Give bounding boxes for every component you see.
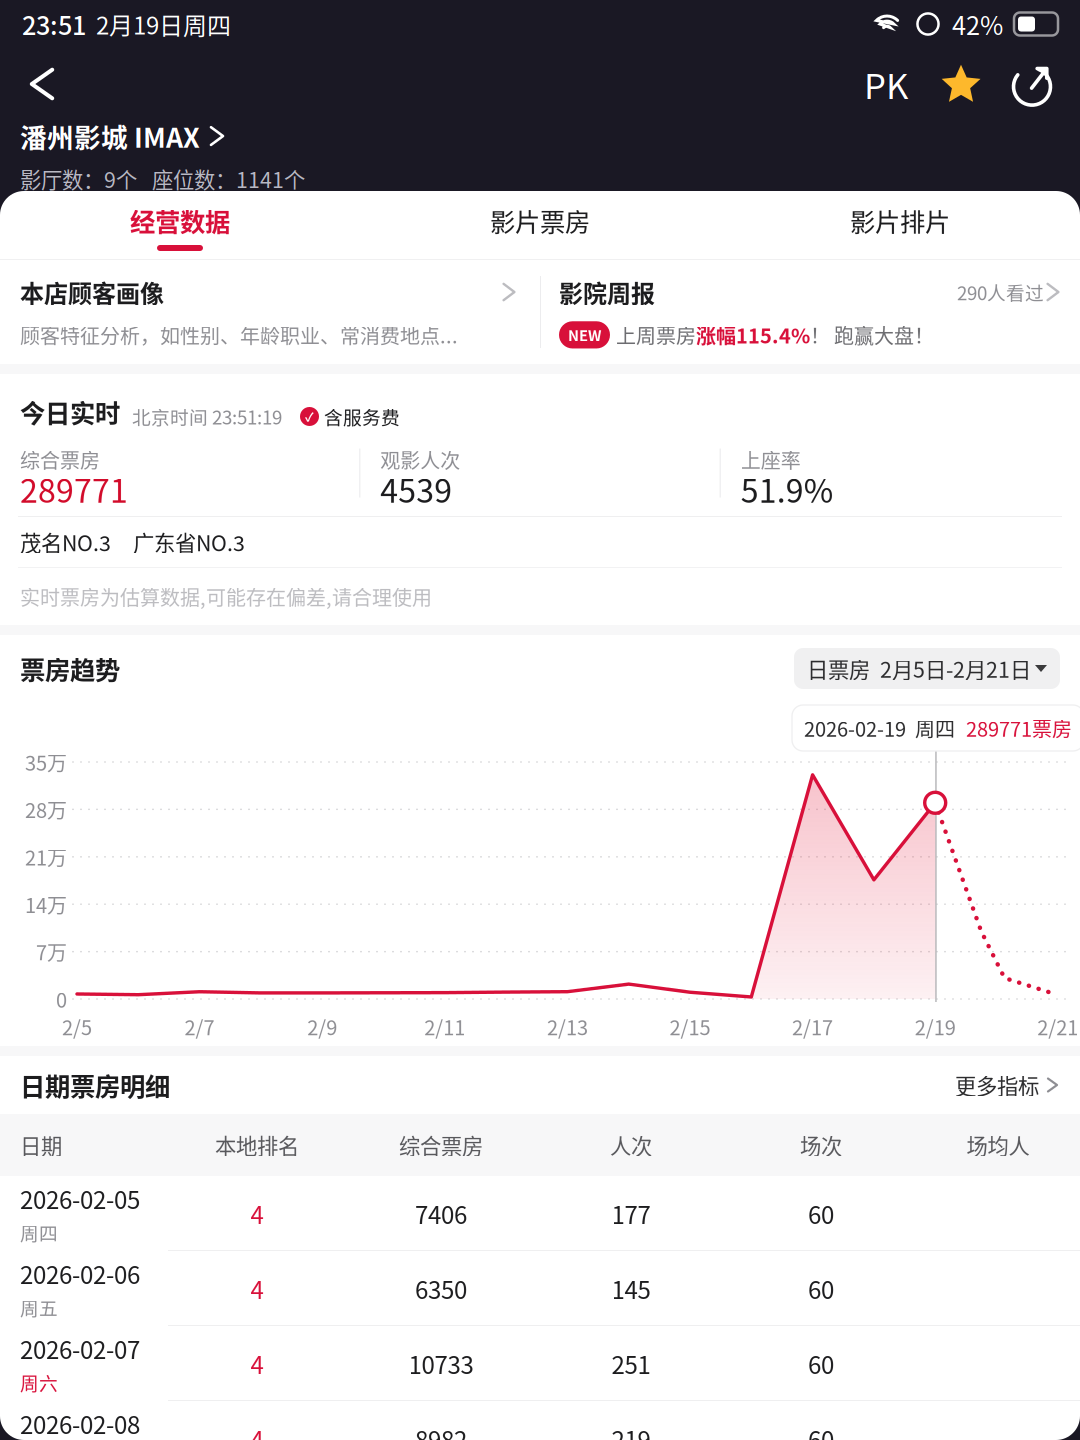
button[interactable]: 2026-02-07 (0, 1326, 1080, 1401)
staticText: 2/13 (547, 1012, 588, 1041)
staticText: 2月5日-2月21日 (880, 653, 1031, 684)
button[interactable]: 本店顾客画像 (0, 260, 540, 364)
staticText: 4539 (380, 466, 452, 512)
staticText: 2/7 (185, 1012, 215, 1041)
staticText: 0 (56, 984, 67, 1013)
staticText: NEW (568, 324, 601, 345)
staticText: 2026-02-19 (804, 713, 906, 742)
staticText: 28万 (25, 795, 67, 824)
staticText: 周四 (20, 1219, 58, 1246)
staticText: 影院周报 (559, 275, 655, 309)
staticText: 2/11 (424, 1012, 465, 1041)
staticText: 2026-02-06 (20, 1256, 140, 1291)
staticText: 实时票房为估算数据,可能存在偏差,请合理使用 (20, 582, 432, 611)
button[interactable]: 潘州影城 IMAX (20, 117, 1060, 155)
staticText: 今日实时 (20, 393, 120, 430)
staticText: 60 (808, 1346, 834, 1381)
staticText: 场次 (800, 1130, 842, 1160)
button[interactable]: 更多指标 (955, 1070, 1060, 1100)
staticText: 289771 (966, 713, 1032, 742)
staticText: 290人看过 (957, 278, 1044, 305)
staticText: 4 (250, 1271, 263, 1306)
staticText: 2/21 (1037, 1012, 1078, 1041)
button[interactable]: 收藏 (924, 48, 998, 120)
staticText: 2026-02-05 (20, 1181, 140, 1216)
staticText: 8982 (415, 1421, 467, 1440)
staticText: 177 (611, 1196, 650, 1231)
staticText: 145 (611, 1271, 650, 1306)
staticText: 42% (952, 6, 1003, 42)
staticText: 60 (808, 1196, 834, 1231)
button[interactable]: 2026-02-08 (0, 1401, 1080, 1440)
staticText: 60 (808, 1421, 834, 1440)
staticText: 2026-02-07 (20, 1331, 140, 1366)
staticText: 周四 (915, 713, 955, 742)
staticText: 2/17 (792, 1012, 833, 1041)
staticText: 60 (808, 1271, 834, 1306)
staticText: 上周票房 (616, 320, 696, 349)
staticText: 289771 (20, 466, 128, 512)
staticText: 2/15 (669, 1012, 710, 1041)
button[interactable]: 分享 (998, 48, 1066, 120)
button[interactable]: 日票房 (794, 648, 1060, 689)
staticText: 票房趋势 (20, 650, 120, 687)
staticText: 日票房 (807, 653, 870, 684)
staticText: 周六 (20, 1369, 58, 1396)
staticText: 本店顾客画像 (20, 275, 164, 309)
staticText: 10733 (408, 1346, 473, 1381)
staticText: 涨幅115.4% (696, 320, 810, 349)
staticText: 51.9% (741, 466, 833, 512)
staticText: 影片排片 (850, 202, 950, 239)
staticText: 4 (250, 1346, 263, 1381)
button[interactable]: 影片票房 (360, 191, 720, 260)
staticText: 21万 (25, 842, 67, 871)
staticText: 场均人 (966, 1130, 1029, 1160)
staticText: 本地排名 (215, 1130, 299, 1160)
staticText: 2/19 (915, 1012, 956, 1041)
staticText: 茂名NO.3 (20, 527, 111, 557)
staticText: 经营数据 (130, 202, 230, 239)
staticText: 含服务费 (324, 403, 400, 430)
staticText: 顾客特征分析，如性别、年龄职业、常消费地点... (20, 320, 458, 349)
button[interactable]: 影院周报 (541, 260, 1080, 364)
button[interactable]: PK (848, 48, 924, 120)
button[interactable]: 2026-02-05 (0, 1176, 1080, 1251)
staticText: 更多指标 (955, 1070, 1039, 1100)
staticText: 2/9 (307, 1012, 337, 1041)
button[interactable]: 经营数据 (0, 191, 360, 260)
staticText: 251 (611, 1346, 650, 1381)
staticText: 人次 (610, 1130, 652, 1160)
staticText: 上座率 (741, 445, 801, 474)
staticText: 2026-02-08 (20, 1406, 140, 1440)
staticText: 6350 (415, 1271, 467, 1306)
staticText: 影厅数：9个 座位数：1141个 (20, 163, 305, 194)
staticText: 周五 (20, 1294, 58, 1321)
button[interactable]: 影片排片 (720, 191, 1080, 260)
staticText: 日期票房明细 (20, 1067, 170, 1103)
staticText: 7406 (415, 1196, 467, 1231)
staticText: 广东省NO.3 (133, 527, 245, 557)
staticText: 日期 (20, 1130, 62, 1160)
staticText: 4 (250, 1421, 263, 1440)
staticText: 综合票房 (399, 1130, 483, 1160)
staticText: 北京时间 23:51:19 (132, 403, 282, 430)
staticText: 7万 (36, 937, 67, 966)
staticText: ✓ (305, 408, 314, 425)
staticText: 2月19日周四 (86, 7, 231, 41)
staticText: 票房 (1032, 713, 1072, 742)
staticText: PK (864, 59, 908, 109)
staticText: 潘州影城 IMAX (20, 117, 200, 155)
staticText: 14万 (25, 890, 67, 919)
staticText: 影片票房 (490, 202, 590, 239)
button[interactable]: 返回 (6, 48, 78, 120)
staticText: 综合票房 (20, 445, 100, 474)
staticText: 观影人次 (380, 445, 460, 474)
staticText: 35万 (25, 747, 67, 776)
staticText: 2/5 (62, 1012, 92, 1041)
staticText: 219 (611, 1421, 650, 1440)
staticText: ！ 跑赢大盘！ (810, 320, 934, 349)
staticText: 23:51 (22, 6, 86, 42)
staticText: 4 (250, 1196, 263, 1231)
button[interactable]: 2026-02-06 (0, 1251, 1080, 1326)
